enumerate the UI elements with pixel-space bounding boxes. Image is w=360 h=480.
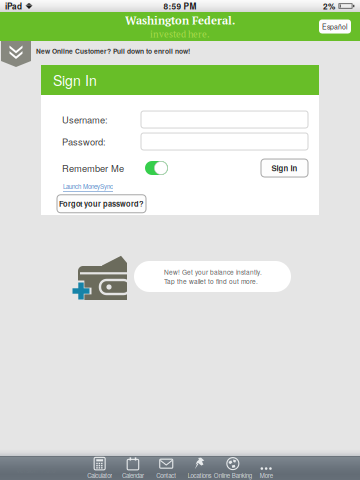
button[interactable]: Online Banking (216, 457, 249, 480)
staticText: 2% (323, 0, 335, 12)
staticText: Password: (62, 135, 106, 148)
button[interactable]: Locations (183, 457, 216, 480)
button[interactable]: Wallet (78, 255, 128, 301)
staticText: Español (322, 21, 348, 31)
staticText: Launch MoneySync (63, 182, 113, 191)
button[interactable]: Launch MoneySync (63, 182, 113, 192)
staticText: Calculator (87, 471, 112, 480)
staticText: Version 1.0.0 (16, 465, 56, 474)
button[interactable]: Remember Me (145, 161, 168, 175)
staticText: Sign In (271, 162, 297, 174)
staticText: Forgot your password? (59, 198, 144, 209)
staticText: Locations (187, 471, 211, 480)
staticText: Calendar (122, 471, 144, 480)
staticText: Remember Me (62, 161, 124, 175)
staticText: invested here. (150, 28, 210, 40)
button[interactable]: Calculator (83, 457, 116, 480)
staticText: Online Banking (214, 471, 252, 480)
button[interactable]: Pull down to enroll (1, 41, 31, 67)
button[interactable]: Español (319, 19, 351, 33)
staticText: Sign In (53, 70, 97, 90)
button[interactable]: Forgot your password? (57, 195, 146, 213)
staticText: iPad (5, 0, 22, 12)
staticText: New Online Customer? Pull down to enroll… (36, 46, 190, 56)
button[interactable]: Sign In (261, 159, 308, 177)
staticText: Washington Federal. (125, 13, 235, 28)
staticText: New! Get your balance instantly. Tap the… (164, 267, 262, 286)
staticText: 8:59 PM (163, 0, 196, 12)
staticText: More (260, 471, 273, 480)
button[interactable]: More (249, 457, 283, 480)
button[interactable]: Calendar (116, 457, 150, 480)
staticText: Contact (156, 471, 176, 480)
staticText: Username: (62, 113, 108, 126)
button[interactable]: Contact (150, 457, 183, 480)
